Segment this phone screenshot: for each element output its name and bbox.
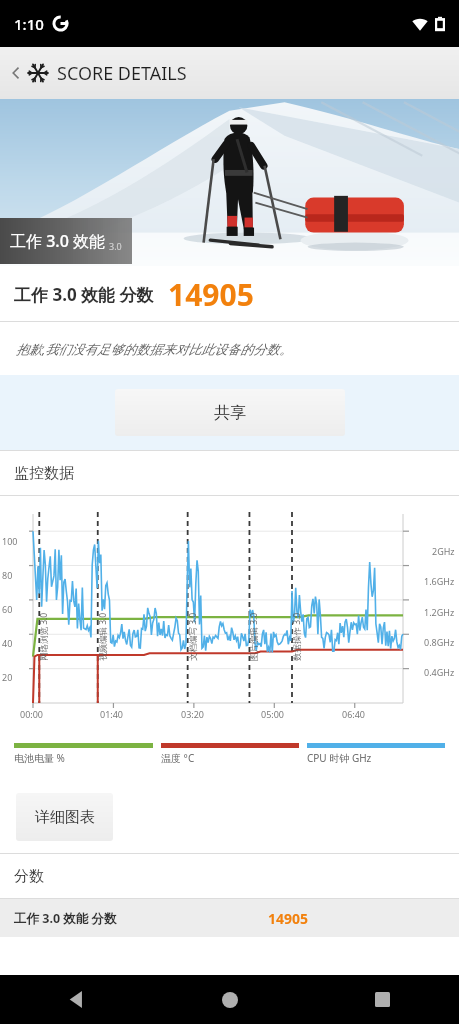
staticText: 20 xyxy=(2,671,13,683)
staticText: 40 xyxy=(2,637,13,649)
button[interactable]: Recent apps xyxy=(306,975,459,1024)
button[interactable]: 共享 xyxy=(115,389,345,436)
staticText: 14905 xyxy=(268,909,309,928)
staticText: 60 xyxy=(2,603,13,615)
staticText: 0.8GHz xyxy=(424,636,455,648)
staticText: 分数 xyxy=(14,867,44,886)
staticText: 2GHz xyxy=(432,545,455,557)
staticText: 详细图表 xyxy=(35,808,95,827)
staticText: 14905 xyxy=(168,274,254,315)
staticText: 温度 °C xyxy=(161,751,195,765)
staticText: SCORE DETAILS xyxy=(57,61,187,86)
staticText: 1.6GHz xyxy=(424,575,455,587)
staticText: 抱歉,我们没有足够的数据来对比此设备的分数。 xyxy=(16,340,293,358)
staticText: 共享 xyxy=(214,403,246,423)
staticText: 00:00 xyxy=(20,708,44,720)
staticText: 数据操作 3.0 xyxy=(291,612,303,661)
staticText: 80 xyxy=(2,569,13,581)
staticText: 01:40 xyxy=(100,708,124,720)
button[interactable]: 详细图表 xyxy=(16,793,113,841)
staticText: 视频编辑 3.0 xyxy=(97,612,109,661)
staticText: 网络浏览 3.0 xyxy=(38,612,50,661)
staticText: 100 xyxy=(2,535,18,547)
staticText: 电池电量 % xyxy=(14,751,65,765)
button[interactable]: Home xyxy=(153,975,306,1024)
staticText: 03:20 xyxy=(181,708,205,720)
button[interactable]: Back xyxy=(0,975,153,1024)
staticText: 06:40 xyxy=(342,708,366,720)
staticText: 0.4GHz xyxy=(424,666,455,678)
staticText: 图片编辑 3.0 xyxy=(248,612,260,661)
staticText: 1.2GHz xyxy=(424,606,455,618)
button[interactable]: Back xyxy=(5,62,27,84)
button[interactable]: 工作 3.0 效能 分数 xyxy=(0,899,459,937)
staticText: 工作 3.0 效能 分数 xyxy=(14,283,154,306)
staticText: 监控数据 xyxy=(14,464,74,483)
staticText: CPU 时钟 GHz xyxy=(307,751,372,765)
staticText: 1:10 xyxy=(14,14,44,34)
staticText: 05:00 xyxy=(261,708,285,720)
staticText: 工作 3.0 效能 分数 xyxy=(14,910,117,927)
staticText: 文档编写 3.0 xyxy=(187,612,199,661)
staticText: 3.0 xyxy=(109,240,122,252)
staticText: 工作 3.0 效能 xyxy=(10,230,105,252)
